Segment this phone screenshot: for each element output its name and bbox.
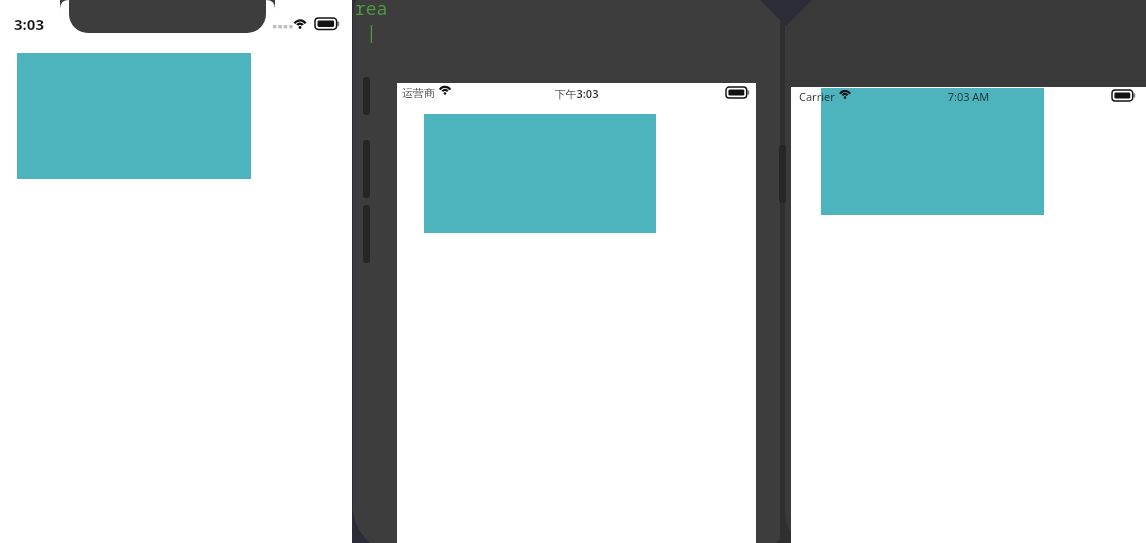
staticText: 运营商 — [402, 86, 435, 100]
button[interactable]: Teal placeholder image — [821, 88, 1044, 215]
staticText: Carrier — [799, 89, 835, 104]
staticText: 3:03 — [14, 14, 44, 34]
staticText: 下午3:03 — [397, 86, 756, 543]
staticText: | — [366, 20, 377, 45]
staticText: rea — [355, 0, 388, 21]
staticText: 7:03 AM — [791, 89, 1146, 543]
